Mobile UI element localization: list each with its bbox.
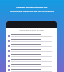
button[interactable]	[6, 33, 57, 38]
staticText: Consectetur adipiscing elit sed do eiusm…	[0, 10, 64, 13]
button[interactable]	[6, 48, 57, 53]
staticText: Lorem ipsum dolor sit amet	[6, 29, 57, 32]
button[interactable]	[6, 53, 57, 58]
button[interactable]	[6, 58, 57, 63]
button[interactable]	[6, 63, 57, 68]
button[interactable]	[6, 68, 57, 72]
button[interactable]	[6, 38, 57, 43]
button[interactable]	[6, 43, 57, 48]
staticText: LOREM IPSUM DOLOR SIT	[0, 6, 64, 9]
